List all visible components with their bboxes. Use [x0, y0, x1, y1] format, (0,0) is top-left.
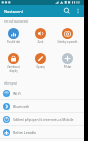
staticText: Sdílení připojení k internetu a Mobile [13, 117, 74, 122]
button[interactable]: Úpravy [27, 53, 54, 69]
staticText: Zamknout displej [3, 65, 24, 73]
button[interactable]: Zvuk [27, 28, 54, 44]
button[interactable]: Režim Letadlo [0, 126, 84, 139]
staticText: Použití dat [3, 40, 24, 44]
staticText: Režim Letadlo [13, 130, 37, 135]
staticText: Wi-Fi [13, 91, 22, 96]
staticText: Nastavení [4, 9, 23, 14]
staticText: Úpravy [30, 65, 51, 69]
staticText: Snímky a posnět [57, 40, 78, 44]
button[interactable]: Zamknout displej [0, 53, 27, 73]
button[interactable]: Sdílení připojení k internetu a Mobile [0, 113, 84, 126]
button[interactable]: Bluetooth [0, 100, 84, 113]
staticText: RYCHLÉ NASTAVENÍ [4, 20, 29, 24]
button[interactable]: Wi-Fi [0, 87, 84, 100]
button[interactable]: Search [62, 6, 72, 16]
staticText: Bluetooth [13, 104, 30, 109]
button[interactable]: More options [74, 7, 82, 15]
staticText: PŘIPOJENÍ [4, 82, 17, 86]
button[interactable]: Snímky a posnět [54, 28, 81, 44]
button[interactable]: Přidat [54, 53, 81, 69]
staticText: Zvuk [30, 40, 51, 44]
button[interactable]: Použití dat [0, 28, 27, 44]
staticText: Přidat [57, 65, 78, 69]
